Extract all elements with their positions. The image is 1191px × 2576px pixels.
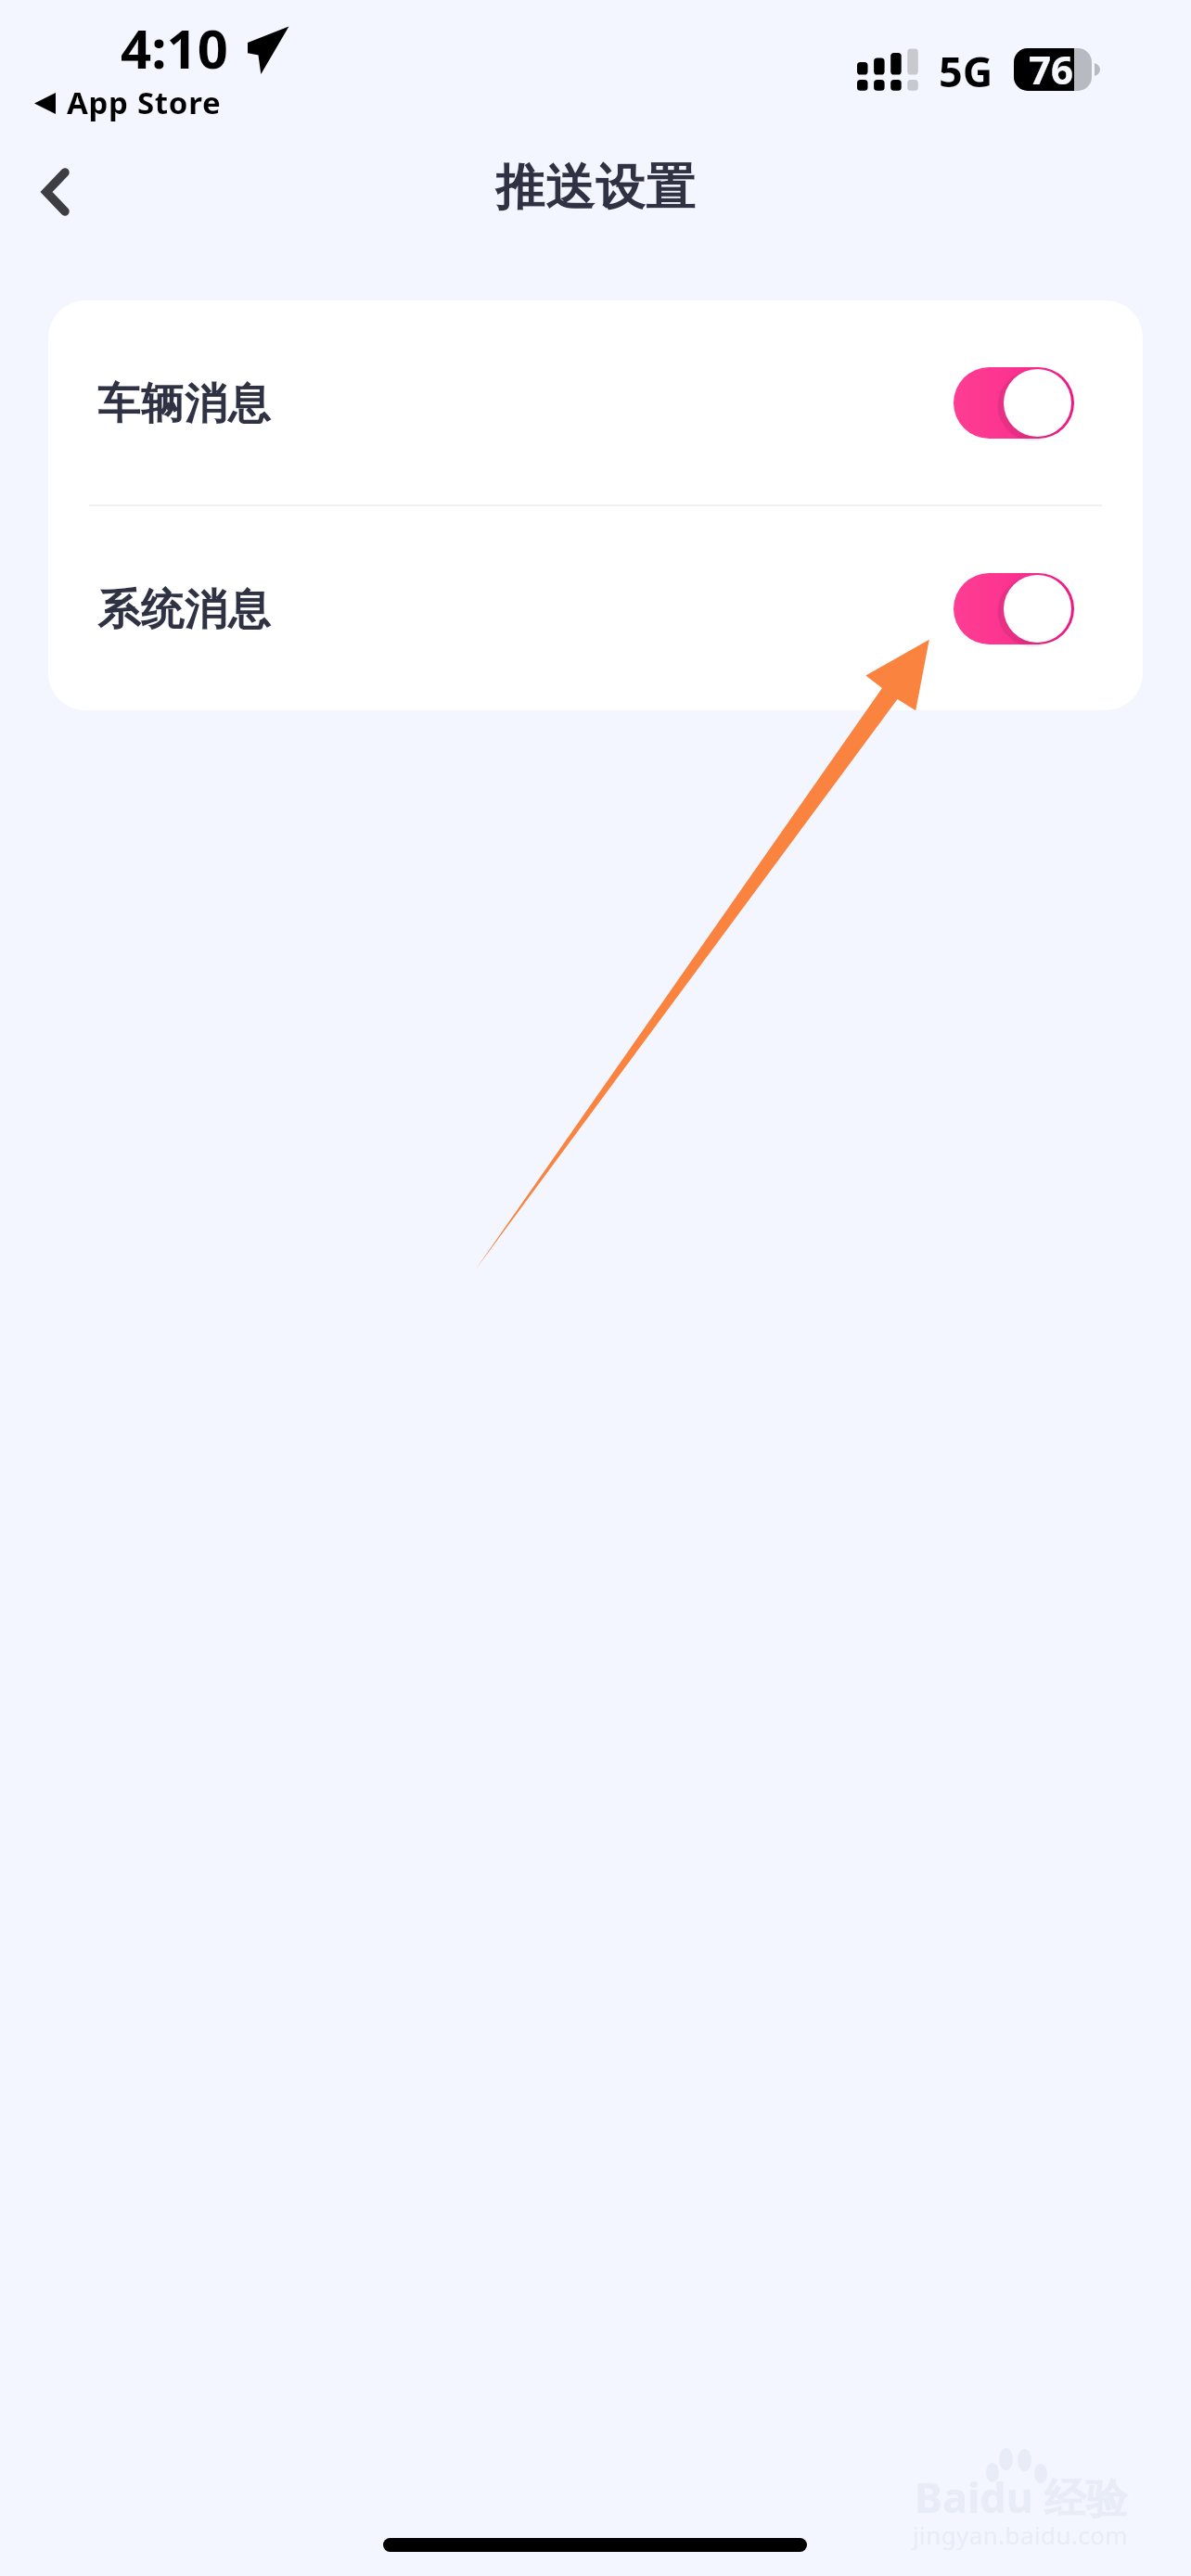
staticText: 推送设置 xyxy=(0,157,1191,219)
staticText: 车辆消息 xyxy=(97,377,272,431)
button[interactable]: 车辆消息 开关 xyxy=(954,367,1074,439)
button[interactable]: 系统消息 开关 xyxy=(954,573,1074,644)
button[interactable]: Back xyxy=(14,146,97,238)
staticText: Baidu 经验 xyxy=(915,2468,1128,2525)
staticText: jingyan.baidu.com xyxy=(913,2519,1128,2551)
staticText: 系统消息 xyxy=(97,583,272,637)
staticText: 5G xyxy=(939,43,993,99)
button[interactable]: 车辆消息 xyxy=(48,300,1143,504)
staticText: App Store xyxy=(67,82,222,123)
staticText: 76 xyxy=(1029,43,1074,96)
button[interactable]: 系统消息 xyxy=(48,506,1143,710)
staticText: 4:10 xyxy=(121,11,228,84)
